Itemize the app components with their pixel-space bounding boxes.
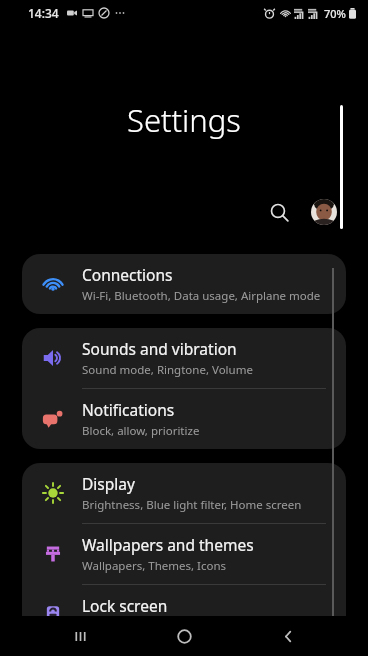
- button[interactable]: Connections: [22, 254, 346, 314]
- staticText: Wallpapers and themes: [82, 534, 254, 555]
- button[interactable]: Search: [257, 190, 301, 234]
- staticText: Settings: [127, 99, 241, 141]
- staticText: Notifications: [82, 399, 175, 420]
- button[interactable]: Recents: [56, 616, 104, 656]
- staticText: Wi-Fi, Bluetooth, Data usage, Airplane m…: [82, 288, 321, 304]
- staticText: Wallpapers, Themes, Icons: [82, 558, 227, 574]
- button[interactable]: Notifications: [22, 389, 346, 449]
- staticText: Screen lock type, Always On Display, Clo…: [82, 619, 332, 635]
- button[interactable]: Sounds and vibration: [22, 328, 346, 388]
- button[interactable]: Display: [22, 463, 346, 523]
- staticText: Sounds and vibration: [82, 338, 237, 359]
- staticText: Block, allow, prioritize: [82, 423, 200, 439]
- staticText: 14:34: [28, 5, 59, 21]
- staticText: Display: [82, 473, 135, 494]
- button[interactable]: Account: [302, 190, 346, 234]
- staticText: Connections: [82, 264, 173, 285]
- button[interactable]: Wallpapers and themes: [22, 524, 346, 584]
- button[interactable]: Home: [160, 616, 208, 656]
- staticText: Lock screen: [82, 595, 168, 616]
- staticText: Brightness, Blue light filter, Home scre…: [82, 497, 302, 513]
- staticText: Sound mode, Ringtone, Volume: [82, 362, 253, 378]
- button[interactable]: Back: [264, 616, 312, 656]
- button[interactable]: Lock screen: [22, 585, 346, 645]
- staticText: 70%: [324, 6, 346, 21]
